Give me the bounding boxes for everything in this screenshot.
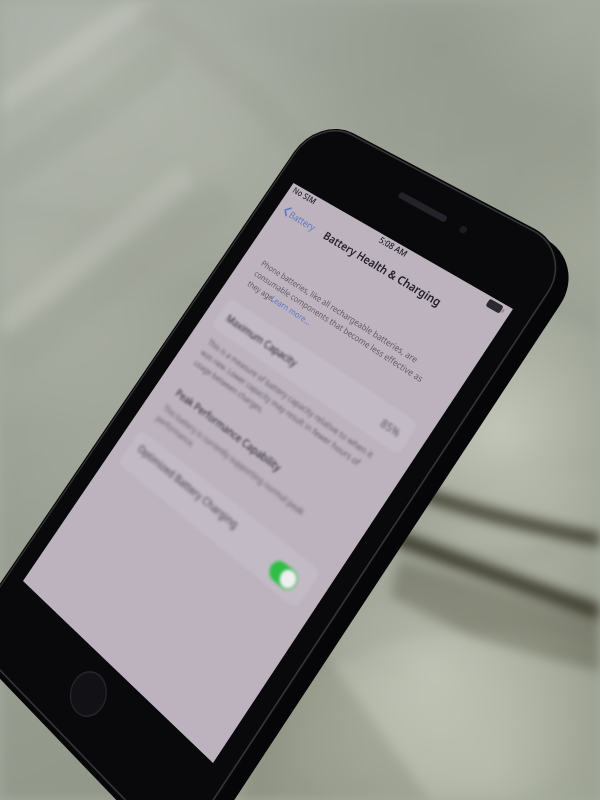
button[interactable]: Phone showing Battery Health & Charging …	[0, 0, 600, 800]
